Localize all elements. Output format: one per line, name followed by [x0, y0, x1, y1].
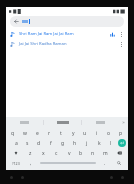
- button[interactable]: r: [43, 128, 55, 138]
- button[interactable]: Expand suggestions: [119, 117, 128, 128]
- button[interactable]: [82, 117, 119, 128]
- staticText: r: [48, 130, 51, 137]
- staticText: i: [96, 130, 98, 137]
- staticText: .: [104, 160, 106, 167]
- staticText: t: [60, 130, 62, 137]
- button[interactable]: [44, 117, 81, 128]
- button[interactable]: Jai Jai Shri Radha Raman: [6, 39, 128, 49]
- staticText: b: [79, 150, 83, 157]
- staticText: f: [50, 140, 52, 147]
- button[interactable]: u: [79, 128, 91, 138]
- staticText: x: [42, 150, 45, 157]
- button[interactable]: n: [87, 148, 99, 158]
- button[interactable]: x: [37, 148, 50, 158]
- button[interactable]: i: [91, 128, 103, 138]
- button[interactable]: Shri Ram Jai Ram Jai Jai Ram: [6, 29, 128, 39]
- other: Now playing: [110, 32, 115, 37]
- button[interactable]: Search: [110, 158, 127, 168]
- button[interactable]: a: [11, 138, 22, 148]
- staticText: k: [98, 140, 101, 147]
- button[interactable]: p: [115, 128, 127, 138]
- staticText: n: [91, 150, 95, 157]
- button[interactable]: More options: [118, 31, 124, 37]
- button[interactable]: Space: [36, 158, 100, 168]
- button[interactable]: Period: [100, 158, 110, 168]
- staticText: w: [23, 130, 27, 137]
- button[interactable]: w: [19, 128, 31, 138]
- button[interactable]: Search: [10, 16, 124, 27]
- button[interactable]: Comma: [25, 158, 36, 168]
- button[interactable]: f: [45, 138, 57, 148]
- button[interactable]: e: [31, 128, 43, 138]
- button[interactable]: m: [99, 148, 111, 158]
- staticText: u: [83, 130, 87, 137]
- staticText: j: [86, 140, 88, 147]
- button[interactable]: v: [63, 148, 75, 158]
- button[interactable]: o: [103, 128, 115, 138]
- button[interactable]: [6, 117, 43, 128]
- staticText: g: [61, 140, 65, 147]
- staticText: y: [72, 130, 75, 137]
- button[interactable]: More options: [118, 41, 124, 47]
- button[interactable]: Backspace: [111, 148, 127, 158]
- staticText: p: [119, 130, 123, 137]
- staticText: o: [107, 130, 111, 137]
- button[interactable]: b: [75, 148, 87, 158]
- button[interactable]: d: [33, 138, 45, 148]
- button[interactable]: k: [93, 138, 105, 148]
- button[interactable]: q: [7, 128, 19, 138]
- button[interactable]: l: [105, 138, 117, 148]
- button[interactable]: y: [67, 128, 79, 138]
- staticText: e: [36, 130, 39, 137]
- staticText: s: [26, 140, 29, 147]
- staticText: z: [29, 150, 32, 157]
- button[interactable]: j: [81, 138, 93, 148]
- staticText: a: [15, 140, 18, 147]
- staticText: ,: [30, 160, 32, 167]
- staticText: Jai Jai Shri Radha Raman: [19, 41, 110, 47]
- staticText: v: [68, 150, 71, 157]
- staticText: d: [37, 140, 41, 147]
- staticText: m: [103, 150, 108, 157]
- button[interactable]: Enter: [118, 139, 126, 147]
- button[interactable]: h: [69, 138, 81, 148]
- staticText: q: [11, 130, 15, 137]
- button[interactable]: g: [57, 138, 69, 148]
- button[interactable]: c: [50, 148, 63, 158]
- button[interactable]: t: [55, 128, 67, 138]
- staticText: l: [110, 140, 112, 147]
- staticText: h: [73, 140, 77, 147]
- button[interactable]: z: [24, 148, 37, 158]
- staticText: Shri Ram Jai Ram Jai Jai Ram: [19, 31, 110, 37]
- button[interactable]: s: [22, 138, 33, 148]
- staticText: c: [55, 150, 58, 157]
- button[interactable]: ?123: [7, 158, 25, 168]
- button[interactable]: Shift: [7, 148, 24, 158]
- staticText: ?123: [12, 161, 20, 166]
